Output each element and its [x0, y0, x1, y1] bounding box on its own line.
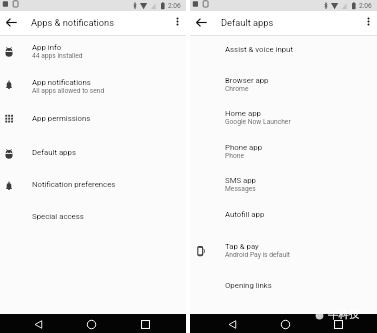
- button[interactable]: Home app: [190, 105, 377, 127]
- staticText: Autofill app: [225, 210, 265, 219]
- staticText: Google Now Launcher: [225, 118, 291, 126]
- staticText: SMS app: [225, 176, 256, 185]
- button[interactable]: Autofill app: [190, 206, 377, 222]
- staticText: All apps allowed to send: [32, 87, 105, 95]
- staticText: Phone app: [225, 143, 263, 152]
- button[interactable]: Back: [226, 318, 238, 330]
- staticText: Phone: [225, 152, 244, 160]
- staticText: Special access: [32, 212, 84, 221]
- button[interactable]: More options: [363, 16, 374, 27]
- button[interactable]: SMS app: [190, 172, 377, 194]
- button[interactable]: App permissions: [0, 110, 186, 126]
- button[interactable]: Navigate up: [195, 16, 208, 29]
- button[interactable]: Recent apps: [139, 318, 151, 330]
- button[interactable]: Phone app: [190, 139, 377, 161]
- staticText: Default apps: [32, 148, 76, 157]
- staticText: Home app: [225, 109, 261, 118]
- button[interactable]: App notifications: [0, 74, 186, 96]
- button[interactable]: Home: [279, 318, 291, 330]
- button[interactable]: Opening links: [190, 277, 377, 293]
- button[interactable]: Home: [85, 318, 97, 330]
- staticText: App permissions: [32, 114, 91, 123]
- staticText: Chrome: [225, 85, 249, 93]
- button[interactable]: More options: [172, 16, 183, 27]
- button[interactable]: Browser app: [190, 72, 377, 94]
- button[interactable]: Assist & voice input: [190, 41, 377, 57]
- staticText: App notifications: [32, 78, 91, 87]
- staticText: Default apps: [221, 17, 274, 28]
- staticText: Messages: [225, 185, 256, 193]
- button[interactable]: Navigate up: [5, 16, 18, 29]
- staticText: Assist & voice input: [225, 45, 293, 54]
- staticText: Browser app: [225, 76, 269, 85]
- staticText: 44 apps installed: [32, 52, 83, 60]
- staticText: App info: [32, 43, 62, 52]
- button[interactable]: Notification preferences: [0, 176, 186, 192]
- staticText: 2:06: [168, 2, 181, 10]
- staticText: Apps & notifications: [31, 17, 115, 28]
- button[interactable]: Recent apps: [332, 318, 344, 330]
- staticText: Notification preferences: [32, 180, 116, 189]
- button[interactable]: Default apps: [0, 144, 186, 160]
- staticText: 牛科技: [328, 308, 360, 321]
- staticText: Opening links: [225, 281, 272, 290]
- button[interactable]: Special access: [0, 208, 186, 224]
- button[interactable]: Tap & pay: [190, 238, 377, 260]
- staticText: Android Pay is default: [225, 251, 291, 259]
- staticText: Tap & pay: [225, 242, 259, 251]
- button[interactable]: Back: [32, 318, 44, 330]
- button[interactable]: App info: [0, 39, 186, 61]
- staticText: 2:06: [359, 2, 372, 10]
